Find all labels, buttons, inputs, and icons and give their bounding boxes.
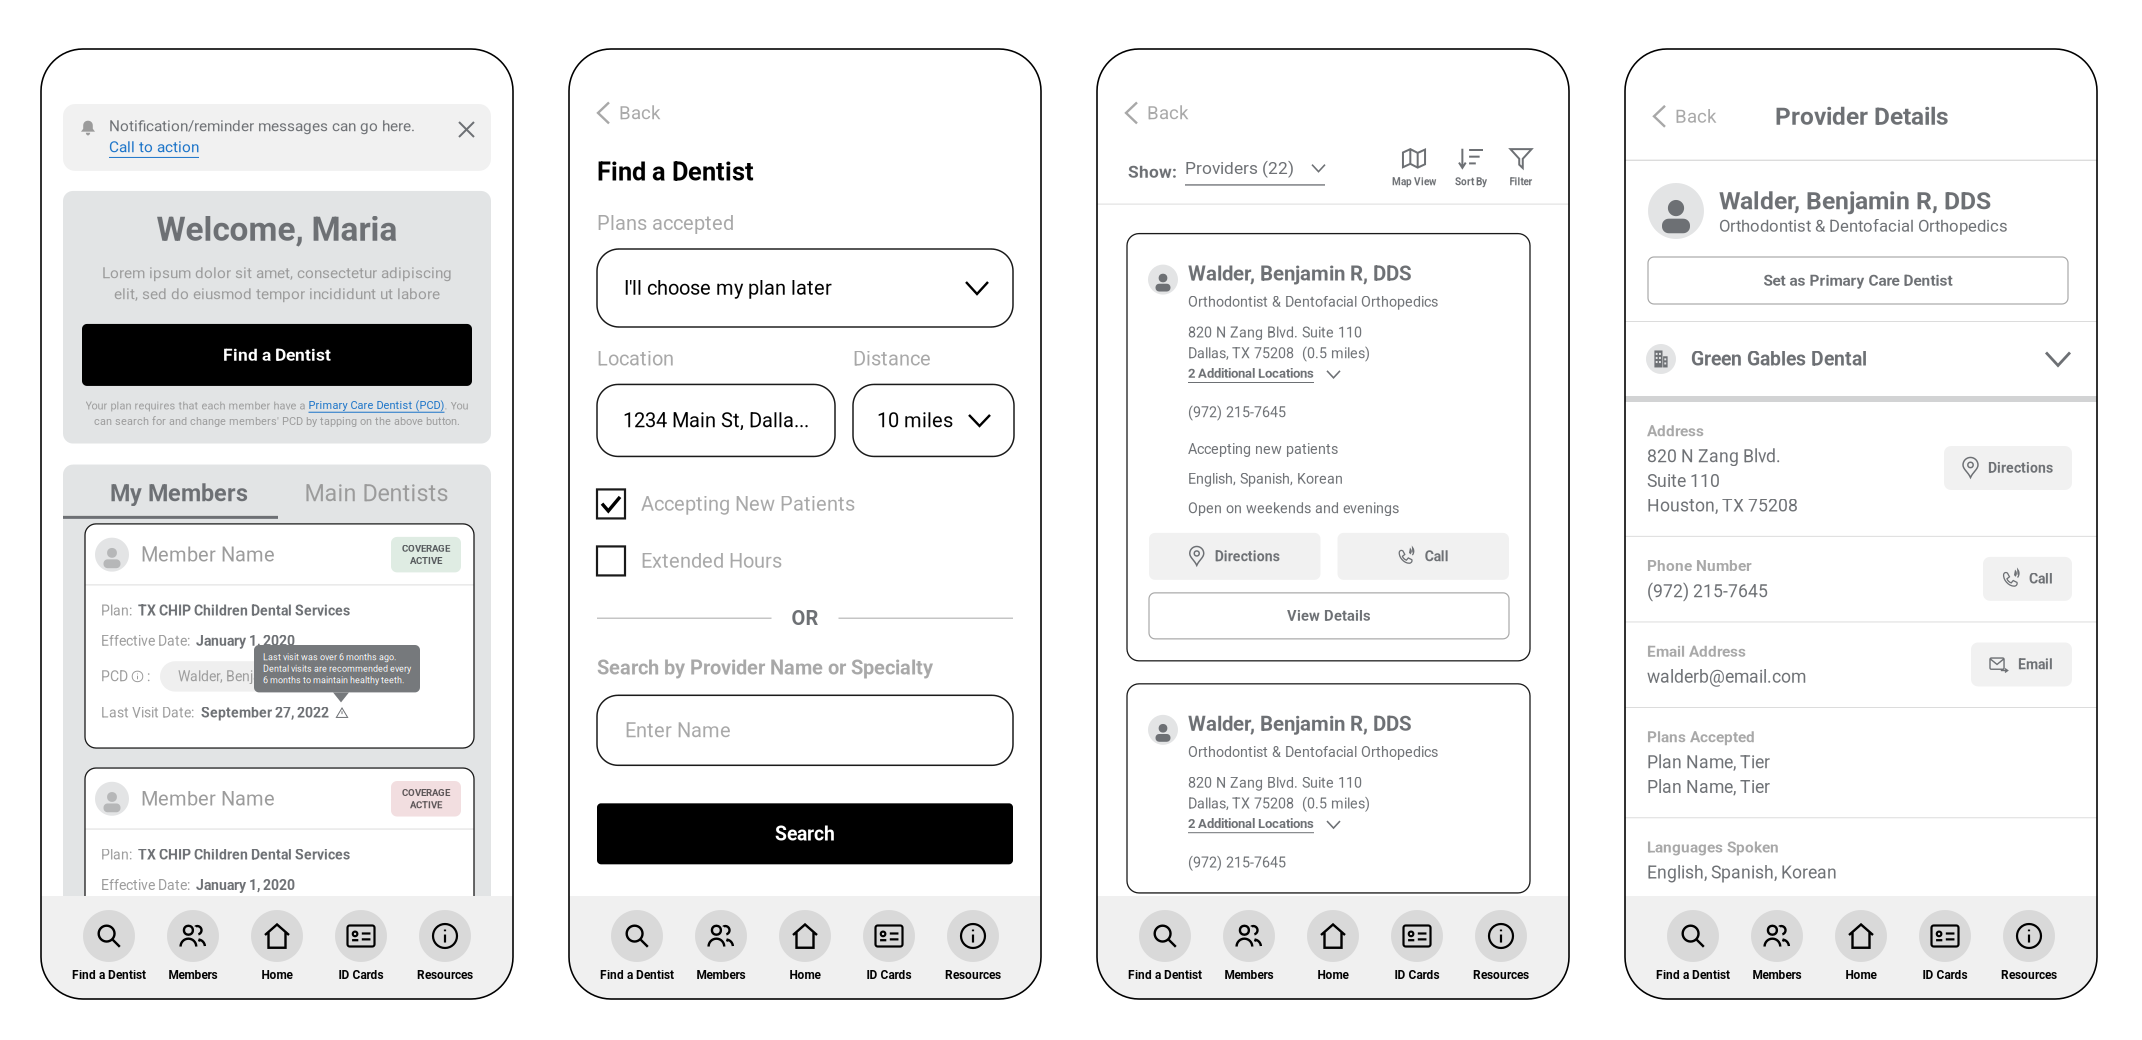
button[interactable]: Set as Primary Care Dentist [1648,257,2068,304]
staticText: Dallas, TX 75208 (0.5 miles) [1188,345,1370,362]
staticText: Filter [1509,176,1532,188]
staticText: ID Cards [1922,968,1967,982]
button[interactable]: Find a Dentist [82,324,472,386]
button[interactable]: Home [1819,910,1903,982]
staticText: Orthodontist & Dentofacial Orthopedics [1188,293,1438,310]
button[interactable]: I'll choose my plan later [597,249,1013,327]
button[interactable]: Call [1337,533,1509,580]
staticText: TX CHIP Children Dental Services [138,602,350,619]
button[interactable]: Resources [1987,910,2071,982]
staticText: Back [1675,105,1716,127]
button[interactable]: Accepting New Patients [597,489,855,518]
button[interactable]: Main Dentists [278,480,491,519]
staticText: Distance [853,347,931,370]
staticText: Member Name [141,787,275,810]
button[interactable]: Call to action [109,138,199,158]
staticText: 2 Additional Locations [1188,366,1314,381]
button[interactable]: Filter [1509,148,1532,188]
staticText: Email Address [1647,642,1746,660]
staticText: I'll choose my plan later [624,276,832,300]
staticText: Plan: [101,846,132,863]
button[interactable]: ID Cards [1375,910,1459,982]
staticText: Enter Name [625,719,731,742]
staticText: Open on weekends and evenings [1188,500,1399,517]
button[interactable]: View Details [1149,593,1509,639]
button[interactable]: Back [598,102,660,124]
staticText: Houston, TX 75208 [1647,495,1798,516]
button[interactable]: Back [1654,105,1716,127]
staticText: Directions [1988,460,2053,476]
button[interactable]: 1234 Main St, Dalla... [597,384,835,456]
button[interactable]: 2 Additional Locations [1188,816,1340,833]
staticText: Walder, Benjamin R, DDS [1188,712,1412,736]
button[interactable]: Home [235,910,319,982]
button[interactable]: Find a Dentist [595,910,679,982]
button[interactable]: Directions [1149,533,1320,580]
button[interactable]: ID Cards [1903,910,1987,982]
staticText: Back [619,102,660,124]
button[interactable]: Members [679,910,763,982]
button[interactable]: Enter Name [597,695,1013,765]
button[interactable]: Green Gables Dental [1625,322,2097,396]
staticText: Members [696,968,745,982]
staticText: 6 months to maintain healthy teeth. [263,675,404,685]
staticText: PCD [101,668,128,685]
button[interactable]: Find a Dentist [67,910,151,982]
button[interactable]: Find a Dentist [1651,910,1735,982]
button[interactable]: Providers (22) [1185,158,1325,186]
button[interactable]: Home [763,910,847,982]
staticText: January 1, 2020 [196,633,295,649]
button[interactable]: Members [1207,910,1291,982]
staticText: Suite 110 [1647,471,1720,491]
staticText: Notification/reminder messages can go he… [109,117,415,135]
button[interactable]: ID Cards [847,910,931,982]
staticText: Directions [1215,548,1280,564]
button[interactable]: Map View [1392,148,1436,188]
staticText: can search for and change members' PCD b… [94,415,460,427]
staticText: (972) 215-7645 [1188,404,1286,421]
staticText: 1234 Main St, Dalla... [623,409,809,432]
staticText: Plans accepted [597,212,734,235]
button[interactable]: Members [151,910,235,982]
staticText: (972) 215-7645 [1647,581,1768,601]
staticText: Walder, Benjamin R, DDS [178,668,328,685]
staticText: ACTIVE [410,799,442,811]
button[interactable]: Call [1983,557,2072,601]
button[interactable]: Directions [1944,446,2072,490]
button[interactable]: ID Cards [319,910,403,982]
button[interactable]: Resources [1459,910,1543,982]
staticText: OR [791,606,818,630]
button[interactable]: Sort By [1455,148,1487,188]
staticText: Phone Number [1647,557,1752,575]
staticText: (972) 215-7645 [1188,854,1286,871]
button[interactable]: Dismiss notification [454,117,479,142]
button[interactable]: Home [1291,910,1375,982]
staticText: Find a Dentist [1656,968,1730,982]
button[interactable]: My Members [63,480,278,519]
staticText: Your plan requires that each member have… [85,399,308,412]
button[interactable]: 10 miles [853,384,1014,456]
staticText: Green Gables Dental [1691,348,1867,370]
staticText: TX CHIP Children Dental Services [138,846,350,863]
staticText: COVERAGE [402,543,450,554]
button[interactable]: Search [597,803,1013,864]
staticText: English, Spanish, Korean [1647,862,1837,883]
staticText: Home [1317,968,1348,982]
staticText: Main Dentists [304,480,448,507]
staticText: Primary Care Dentist (PCD) [308,399,444,412]
staticText: Set as Primary Care Dentist [1763,271,1952,289]
staticText: Email [2018,656,2053,673]
button[interactable]: Members [1735,910,1819,982]
button[interactable]: Resources [931,910,1015,982]
button[interactable]: Extended Hours [597,546,782,575]
staticText: English, Spanish, Korean [1188,470,1343,487]
button[interactable]: 2 Additional Locations [1188,366,1340,383]
staticText: Provider Details [1775,102,1949,131]
button[interactable]: Back [1126,102,1188,124]
staticText: 820 N Zang Blvd. Suite 110 [1188,324,1362,341]
button[interactable]: Resources [403,910,487,982]
staticText: elit, sed do eiusmod tempor incididunt u… [114,285,440,303]
button[interactable]: Find a Dentist [1123,910,1207,982]
staticText: . You [444,399,468,412]
button[interactable]: Email [1971,642,2072,686]
